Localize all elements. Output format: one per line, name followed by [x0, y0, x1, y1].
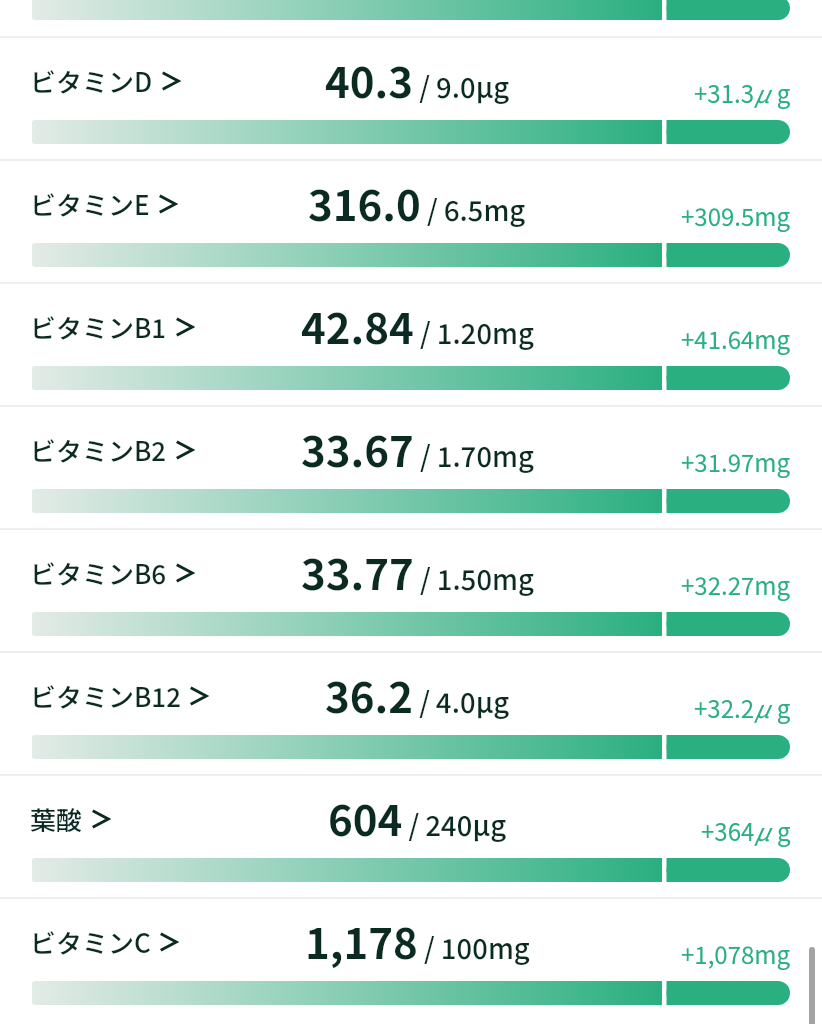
staticText: +31.97mg	[681, 444, 791, 479]
button[interactable]: ビタミンB6	[0, 528, 822, 651]
staticText: 40.3 / 9.0µg	[325, 49, 510, 110]
staticText: 33.77 / 1.50mg	[301, 541, 534, 602]
other: ビタミンC	[30, 897, 178, 961]
other: 葉酸	[30, 774, 110, 838]
staticText: 604 / 240µg	[328, 787, 507, 848]
staticText: 36.2 / 4.0µg	[325, 664, 510, 725]
staticText: +1,078mg	[681, 936, 791, 971]
staticText: +309.5mg	[681, 198, 791, 233]
other: ビタミンB1	[30, 282, 194, 346]
staticText: +364μg	[701, 813, 791, 848]
staticText: ビタミンD	[30, 62, 153, 100]
staticText: ビタミンB6	[30, 554, 167, 592]
other: ビタミンD	[30, 36, 180, 100]
staticText: 1,178 / 100mg	[305, 910, 530, 971]
staticText: 33.67 / 1.70mg	[301, 418, 534, 479]
other: ビタミンE	[30, 159, 177, 223]
button[interactable]: ビタミンD	[0, 36, 822, 159]
staticText: 葉酸	[30, 800, 83, 838]
staticText: ビタミンC	[30, 923, 151, 961]
staticText: ビタミンB1	[30, 308, 167, 346]
button[interactable]: ビタミンC	[0, 897, 822, 1020]
staticText: +32.27mg	[681, 567, 791, 602]
staticText: +41.64mg	[681, 321, 791, 356]
other: ビタミンB12	[30, 651, 208, 715]
staticText: ビタミンB2	[30, 431, 167, 469]
staticText: +31.3μg	[694, 75, 791, 110]
button[interactable]: ビタミンE	[0, 159, 822, 282]
other: ビタミンB6	[30, 528, 194, 592]
other: ビタミンB2	[30, 405, 194, 469]
staticText: 42.84 / 1.20mg	[301, 295, 534, 356]
button[interactable]: ビタミンB1	[0, 282, 822, 405]
button[interactable]: ビタミンB12	[0, 651, 822, 774]
staticText: ビタミンB12	[30, 677, 181, 715]
button[interactable]: ビタミンB2	[0, 405, 822, 528]
staticText: +32.2μg	[694, 690, 791, 725]
button[interactable]: 葉酸	[0, 774, 822, 897]
staticText: ビタミンE	[30, 185, 150, 223]
staticText: 316.0 / 6.5mg	[308, 172, 526, 233]
